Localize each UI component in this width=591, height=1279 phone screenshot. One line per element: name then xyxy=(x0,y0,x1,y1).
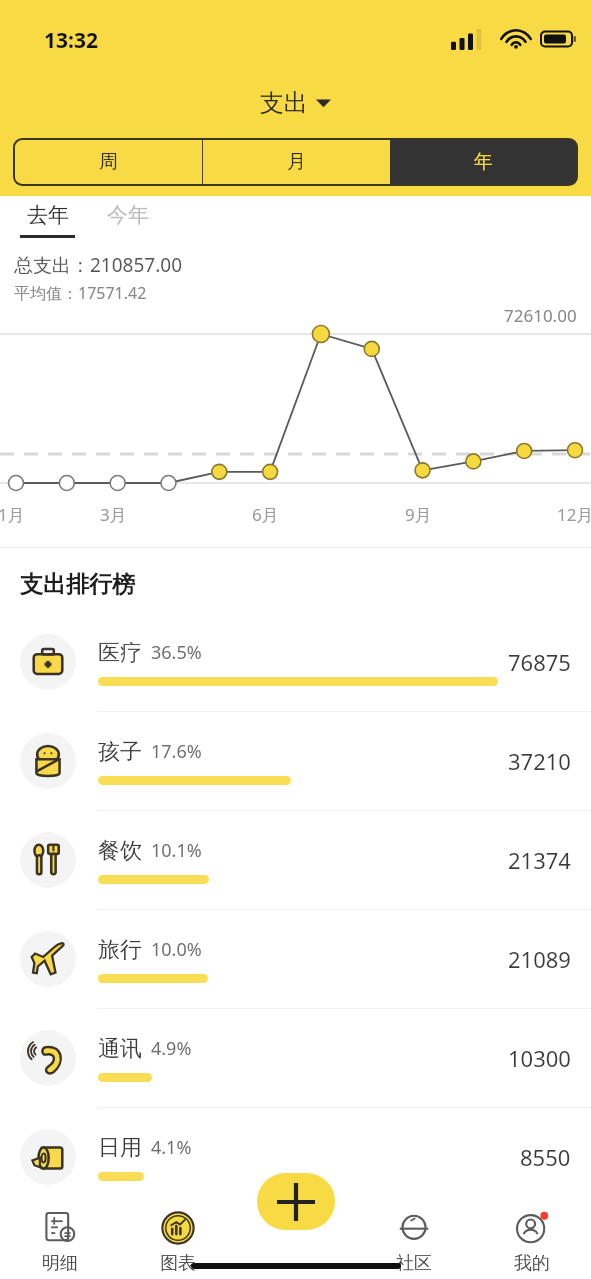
staticText: 日用 xyxy=(98,1134,142,1162)
button[interactable]: 我的 xyxy=(473,1206,591,1279)
staticText: 医疗 xyxy=(98,639,142,667)
staticText: 社区 xyxy=(396,1252,432,1275)
staticText: 21374 xyxy=(508,845,571,875)
staticText: 通讯 xyxy=(98,1035,142,1063)
staticText: 8550 xyxy=(520,1142,571,1172)
staticText: 76875 xyxy=(508,647,571,677)
staticText: 10.1% xyxy=(151,838,202,863)
staticText: 明细 xyxy=(42,1252,78,1275)
button[interactable]: 今年 xyxy=(107,202,149,238)
staticText: 3月 xyxy=(100,503,127,526)
staticText: 月 xyxy=(287,150,306,174)
button[interactable]: 记账 xyxy=(257,1173,335,1230)
staticText: 72610.00 xyxy=(504,304,577,326)
button[interactable]: 社区 xyxy=(355,1206,473,1279)
staticText: 4.1% xyxy=(151,1135,192,1160)
staticText: 支出排行榜 xyxy=(20,570,135,599)
staticText: 1月 xyxy=(0,503,25,526)
button[interactable]: 餐饮 xyxy=(0,811,591,909)
staticText: 我的 xyxy=(514,1252,550,1275)
staticText: 餐饮 xyxy=(98,837,142,865)
staticText: 周 xyxy=(99,150,118,174)
button[interactable]: 去年 xyxy=(20,202,79,238)
button[interactable]: 周 xyxy=(14,139,202,185)
staticText: 去年 xyxy=(27,202,69,228)
button[interactable]: 明细 xyxy=(0,1206,119,1279)
button[interactable]: 月 xyxy=(203,139,390,185)
button[interactable]: 年 xyxy=(390,139,577,185)
button[interactable]: 支出 xyxy=(254,88,337,118)
staticText: 17.6% xyxy=(151,739,202,764)
staticText: 37210 xyxy=(508,746,571,776)
button[interactable]: 医疗 xyxy=(0,613,591,711)
staticText: 图表 xyxy=(160,1252,196,1275)
staticText: 21089 xyxy=(508,944,571,974)
button[interactable]: 孩子 xyxy=(0,712,591,810)
staticText: 平均值：17571.42 xyxy=(14,282,147,304)
staticText: 4.9% xyxy=(151,1036,192,1061)
staticText: 9月 xyxy=(405,503,432,526)
staticText: 10300 xyxy=(508,1043,571,1073)
staticText: 10.0% xyxy=(151,937,202,962)
staticText: 36.5% xyxy=(151,640,202,665)
staticText: 6月 xyxy=(252,503,279,526)
staticText: 今年 xyxy=(107,202,149,228)
staticText: 支出 xyxy=(260,88,308,118)
button[interactable]: 通讯 xyxy=(0,1009,591,1107)
staticText: 孩子 xyxy=(98,738,142,766)
staticText: 总支出：210857.00 xyxy=(14,252,183,278)
staticText: 年 xyxy=(474,150,493,174)
button[interactable]: 图表 xyxy=(119,1206,237,1279)
staticText: 13:32 xyxy=(44,26,98,55)
staticText: 12月 xyxy=(557,503,591,526)
staticText: 旅行 xyxy=(98,936,142,964)
button[interactable]: 旅行 xyxy=(0,910,591,1008)
button[interactable]: 日用 xyxy=(0,1108,591,1206)
